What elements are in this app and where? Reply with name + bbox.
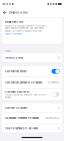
staticText: PÍSMO: [5, 50, 12, 52]
button[interactable]: Rozlišení obrazovky: [2, 103, 62, 112]
button[interactable]: Velikost písma: [2, 53, 62, 62]
staticText: Automaticky upravuje barevný tón displej…: [5, 24, 47, 32]
staticText: Udržuje obrazovku zapnutou, když se na n…: [5, 94, 47, 99]
button[interactable]: Automaticky zamknout obrazovku: [2, 77, 62, 88]
staticText: Velikost písma: [5, 56, 23, 59]
staticText: Automaticky: [45, 117, 57, 119]
button[interactable]: Obnovovací frekvence obrazovky: [2, 113, 62, 124]
staticText: Celá obrazovka pro aplikace: [5, 127, 38, 130]
staticText: Automatický vzhled: [5, 70, 27, 73]
staticText: Sledování pozornosti: [5, 90, 30, 93]
staticText: Další informace…: [5, 32, 24, 35]
staticText: Automaticky zamknout obrazovku: [5, 81, 42, 84]
staticText: Obnovovací frekvence obrazovky: [5, 117, 39, 120]
staticText: Adaptivní tón: [5, 20, 24, 23]
button[interactable]: Back: [2, 9, 8, 16]
staticText: Rozlišení obrazovky: [5, 106, 27, 109]
staticText: 30 sekund: [48, 81, 57, 84]
button[interactable]: Celá obrazovka pro aplikace: [2, 124, 62, 133]
staticText: Displej a jas: [9, 11, 27, 14]
